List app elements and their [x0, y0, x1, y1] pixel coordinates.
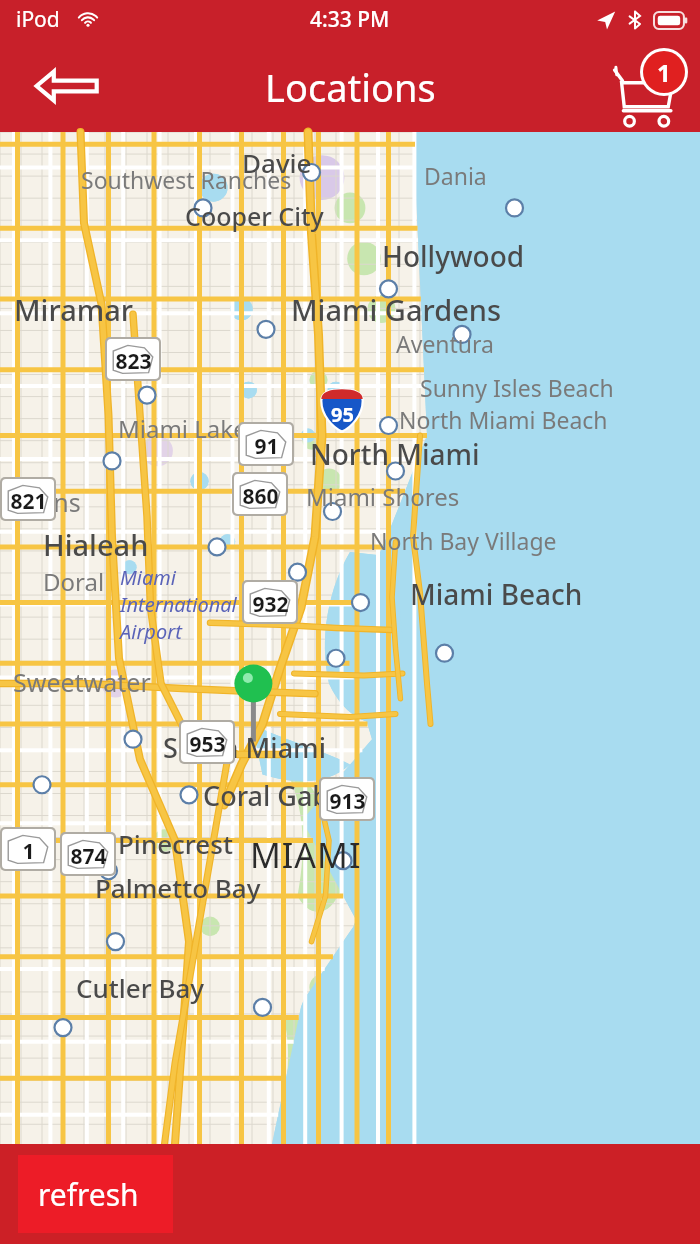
- staticText: 95: [331, 401, 354, 428]
- staticText: 913: [329, 787, 366, 816]
- staticText: Miami Beach: [410, 575, 583, 613]
- staticText: Davie: [242, 145, 312, 180]
- staticText: 874: [70, 842, 107, 871]
- button[interactable]: Cart: [604, 46, 692, 126]
- staticText: 932: [252, 590, 289, 619]
- staticText: Hollywood: [382, 237, 525, 275]
- staticText: 91: [254, 432, 279, 461]
- staticText: iPod: [16, 5, 60, 34]
- staticText: South Miami: [163, 729, 326, 766]
- staticText: ardens: [0, 485, 81, 519]
- staticText: 821: [10, 487, 47, 516]
- staticText: Sunny Isles Beach: [420, 372, 614, 403]
- staticText: Cutler Bay: [76, 970, 205, 1005]
- staticText: Cooper City: [185, 199, 324, 233]
- staticText: 953: [189, 730, 226, 759]
- staticText: Miami Gardens: [291, 290, 502, 329]
- staticText: Sweetwater: [13, 665, 151, 699]
- staticText: Legal: [28, 1214, 84, 1244]
- staticText: Miramar: [14, 290, 134, 329]
- staticText: North Bay Village: [370, 525, 557, 556]
- staticText: International: [120, 591, 237, 618]
- staticText: 1: [657, 56, 671, 89]
- staticText: Airport: [120, 618, 182, 645]
- button[interactable]: Legal: [28, 1214, 84, 1244]
- button[interactable]: refresh: [18, 1155, 173, 1233]
- staticText: Miami Lakes: [118, 412, 259, 445]
- staticText: Palmetto Bay: [95, 870, 261, 905]
- staticText: Miami Shores: [306, 480, 460, 513]
- staticText: Southwest Ranches: [81, 164, 292, 195]
- staticText: 823: [115, 347, 152, 376]
- staticText: 4:33 PM: [310, 5, 390, 34]
- staticText: Pinecrest: [118, 826, 233, 861]
- staticText: Miami: [120, 564, 240, 591]
- staticText: North Miami: [310, 435, 480, 473]
- staticText: refresh: [38, 1174, 139, 1215]
- staticText: MIAMI: [250, 832, 362, 878]
- button[interactable]: Back: [34, 62, 100, 110]
- staticText: Dania: [424, 160, 487, 191]
- staticText: 860: [242, 482, 279, 511]
- staticText: North Miami Beach: [399, 404, 608, 435]
- staticText: Aventura: [396, 328, 495, 359]
- staticText: Doral: [43, 565, 105, 598]
- staticText: Hialeah: [43, 525, 149, 564]
- staticText: 1: [22, 837, 35, 866]
- staticText: Locations: [265, 61, 436, 113]
- staticText: Coral Gables: [203, 777, 365, 814]
